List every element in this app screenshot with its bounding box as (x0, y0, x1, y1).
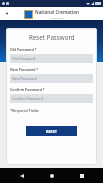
staticText: Reset Password (29, 33, 75, 41)
button[interactable]: Home (46, 170, 57, 181)
staticText: National Cremation (35, 9, 79, 15)
button[interactable]: RESET (26, 126, 77, 136)
button[interactable]: Back (16, 170, 27, 181)
button[interactable]: Confirm Password (10, 94, 93, 103)
button[interactable]: Back (2, 9, 11, 18)
button[interactable]: Old Password (10, 54, 93, 63)
staticText: Old Password (12, 56, 36, 61)
button[interactable]: New Password (10, 74, 93, 83)
staticText: New Password * (10, 67, 39, 72)
staticText: *Required Fields (10, 108, 39, 113)
button[interactable]: Recent apps (76, 170, 87, 181)
staticText: Old Password * (10, 47, 37, 52)
staticText: S E R V I C E (51, 16, 64, 19)
staticText: RESET (46, 129, 58, 134)
staticText: Confirm Password * (10, 87, 45, 92)
staticText: New Password (12, 76, 37, 81)
staticText: Confirm Password (12, 96, 43, 101)
